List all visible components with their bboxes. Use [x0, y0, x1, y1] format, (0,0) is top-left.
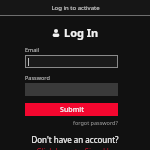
button[interactable]: Click here to Sign Up: [36, 146, 114, 150]
staticText: Log in to activate: [51, 4, 100, 12]
staticText: Email: [25, 46, 40, 53]
staticText: Submit: [60, 105, 84, 115]
button[interactable]: Submit: [25, 103, 118, 116]
staticText: Don't have an account?: [31, 134, 119, 145]
staticText: forgot password?: [73, 119, 118, 126]
staticText: Log In: [64, 25, 99, 40]
staticText: Click here to Sign Up: [36, 146, 114, 150]
button[interactable]: [25, 55, 118, 68]
staticText: Password: [25, 74, 50, 81]
button[interactable]: forgot password?: [73, 119, 118, 126]
